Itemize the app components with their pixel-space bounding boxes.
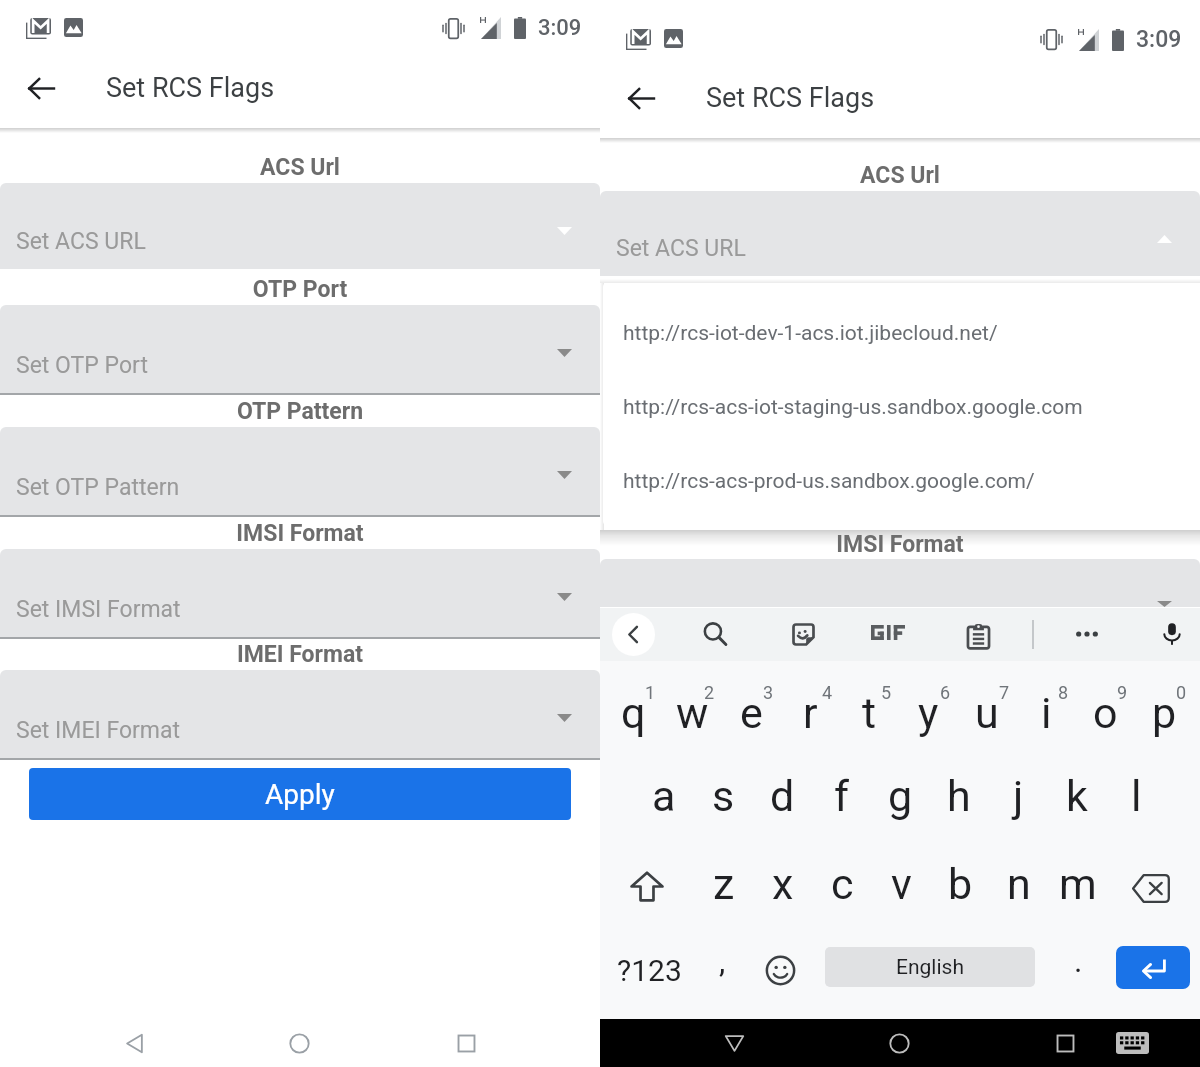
- staticText: Set RCS Flags: [706, 82, 875, 114]
- staticText: z: [713, 859, 735, 909]
- button[interactable]: v: [871, 841, 931, 927]
- staticText: b: [948, 859, 973, 909]
- button[interactable]: Search: [692, 611, 738, 657]
- button[interactable]: i: [1016, 670, 1076, 756]
- staticText: u: [975, 688, 999, 738]
- button[interactable]: Expand toolbar: [612, 613, 655, 656]
- button[interactable]: b: [930, 841, 990, 927]
- button[interactable]: .: [1050, 932, 1107, 1008]
- button[interactable]: http://rcs-iot-dev-1-acs.iot.jibecloud.n…: [603, 296, 1200, 370]
- button[interactable]: Home: [875, 1019, 923, 1067]
- staticText: j: [1013, 771, 1024, 821]
- button[interactable]: English: [825, 947, 1035, 987]
- button[interactable]: f: [811, 753, 871, 839]
- staticText: t: [862, 688, 877, 738]
- button[interactable]: [600, 559, 1200, 607]
- staticText: Set OTP Port: [16, 352, 148, 379]
- button[interactable]: Set OTP Pattern: [0, 427, 600, 515]
- button[interactable]: Set OTP Port: [0, 305, 600, 393]
- button[interactable]: ,: [694, 932, 751, 1008]
- staticText: q: [621, 688, 646, 738]
- button[interactable]: k: [1047, 753, 1107, 839]
- button[interactable]: Set IMSI Format: [0, 549, 600, 637]
- staticText: http://rcs-acs-iot-staging-us.sandbox.go…: [623, 395, 1083, 420]
- button[interactable]: Set ACS URL: [0, 183, 600, 269]
- button[interactable]: Backspace: [1107, 845, 1197, 931]
- staticText: 4: [822, 682, 833, 703]
- staticText: r: [803, 688, 818, 738]
- staticText: m: [1059, 859, 1097, 909]
- button[interactable]: Shift: [602, 845, 692, 931]
- button[interactable]: More options: [1064, 611, 1110, 657]
- staticText: c: [831, 859, 854, 909]
- button[interactable]: Set ACS URL: [600, 191, 1200, 276]
- button[interactable]: u: [957, 670, 1017, 756]
- staticText: ACS Url: [600, 162, 1200, 189]
- button[interactable]: Home: [271, 1020, 327, 1067]
- button[interactable]: Recents: [438, 1020, 494, 1067]
- button[interactable]: j: [988, 753, 1048, 839]
- button[interactable]: Back: [17, 64, 65, 112]
- staticText: Set RCS Flags: [106, 72, 275, 104]
- staticText: English: [896, 955, 964, 980]
- staticText: .: [1074, 942, 1083, 980]
- button[interactable]: Keyboard: [1108, 1019, 1156, 1067]
- staticText: o: [1093, 688, 1118, 738]
- staticText: IMSI Format: [0, 520, 600, 547]
- button[interactable]: Apply: [29, 768, 571, 820]
- button[interactable]: Back: [617, 74, 665, 122]
- button[interactable]: w: [662, 670, 722, 756]
- button[interactable]: Stickers: [780, 611, 826, 657]
- button[interactable]: r: [780, 670, 840, 756]
- staticText: i: [1041, 688, 1052, 738]
- staticText: k: [1066, 771, 1088, 821]
- staticText: 5: [881, 682, 892, 703]
- button[interactable]: o: [1075, 670, 1135, 756]
- button[interactable]: y: [898, 670, 958, 756]
- button[interactable]: e: [721, 670, 781, 756]
- staticText: w: [676, 688, 709, 738]
- staticText: 3: [763, 682, 774, 703]
- button[interactable]: q: [603, 670, 663, 756]
- button[interactable]: Voice input: [1149, 611, 1195, 657]
- staticText: h: [947, 771, 971, 821]
- button[interactable]: Clipboard: [955, 613, 1001, 659]
- button[interactable]: p: [1134, 670, 1194, 756]
- staticText: p: [1152, 688, 1177, 738]
- button[interactable]: m: [1048, 841, 1108, 927]
- button[interactable]: t: [839, 670, 899, 756]
- button[interactable]: g: [870, 753, 930, 839]
- button[interactable]: Enter: [1116, 946, 1190, 989]
- staticText: n: [1007, 859, 1031, 909]
- staticText: x: [772, 859, 794, 909]
- button[interactable]: a: [634, 753, 694, 839]
- staticText: v: [891, 859, 912, 909]
- staticText: 8: [1058, 682, 1069, 703]
- staticText: IMSI Format: [600, 531, 1200, 558]
- staticText: l: [1131, 771, 1142, 821]
- button[interactable]: http://rcs-acs-prod-us.sandbox.google.co…: [603, 444, 1200, 518]
- button[interactable]: ?123: [604, 932, 694, 1008]
- button[interactable]: n: [989, 841, 1049, 927]
- button[interactable]: h: [929, 753, 989, 839]
- button[interactable]: Recents: [1041, 1019, 1089, 1067]
- button[interactable]: l: [1106, 753, 1166, 839]
- button[interactable]: Back: [710, 1019, 758, 1067]
- button[interactable]: Back: [106, 1020, 162, 1067]
- staticText: Apply: [265, 778, 335, 811]
- button[interactable]: Emoji: [751, 932, 809, 1008]
- button[interactable]: http://rcs-acs-iot-staging-us.sandbox.go…: [603, 370, 1200, 444]
- button[interactable]: z: [694, 841, 754, 927]
- staticText: Set ACS URL: [16, 228, 146, 255]
- button[interactable]: s: [693, 753, 753, 839]
- button[interactable]: GIF: [870, 612, 906, 652]
- button[interactable]: d: [752, 753, 812, 839]
- staticText: ,: [719, 942, 726, 980]
- staticText: 9: [1117, 682, 1128, 703]
- button[interactable]: x: [753, 841, 813, 927]
- staticText: 3:09: [1136, 26, 1182, 53]
- button[interactable]: Set IMEI Format: [0, 670, 600, 758]
- button[interactable]: c: [812, 841, 872, 927]
- staticText: 6: [940, 682, 951, 703]
- staticText: 7: [999, 682, 1010, 703]
